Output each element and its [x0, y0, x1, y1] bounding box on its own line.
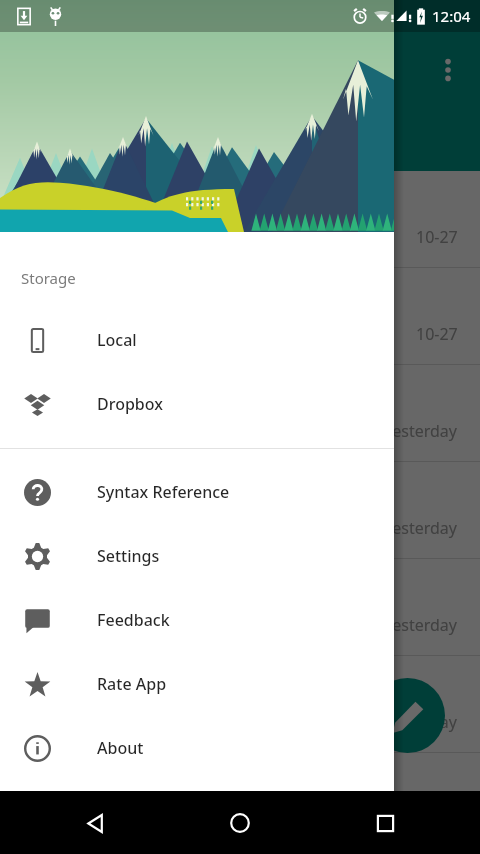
staticText: Yesterday [384, 420, 458, 442]
staticText: Dropbox [97, 393, 163, 415]
button[interactable]: About [0, 716, 394, 780]
staticText: About [97, 737, 144, 759]
button[interactable]: 10-27 [0, 268, 480, 365]
button[interactable]: Settings [0, 524, 394, 588]
button[interactable]: Dropbox [0, 372, 394, 436]
button[interactable]: Yesterday [0, 365, 480, 462]
button[interactable]: Recents [362, 800, 408, 846]
staticText: Storage [21, 268, 76, 288]
button[interactable]: 10-27 [0, 171, 480, 268]
staticText: Yesterday [384, 517, 458, 539]
button[interactable]: New note [370, 678, 445, 753]
staticText: Yesterday [384, 711, 458, 733]
staticText: Rate App [97, 673, 167, 695]
button[interactable]: Back [72, 800, 118, 846]
button[interactable]: Local [0, 308, 394, 372]
button[interactable]: Yesterday [0, 462, 480, 559]
staticText: 10-27 [416, 226, 458, 248]
button[interactable]: Yesterday [0, 656, 480, 753]
button[interactable]: Home [217, 800, 263, 846]
staticText: 10-27 [416, 323, 458, 345]
staticText: Yesterday [384, 614, 458, 636]
button[interactable]: More options [424, 46, 472, 94]
staticText: Syntax Reference [97, 481, 230, 503]
button[interactable]: Syntax Reference [0, 460, 394, 524]
staticText: Settings [97, 545, 160, 567]
staticText: Feedback [97, 609, 170, 631]
staticText: Yesterday [384, 808, 458, 830]
staticText: Local [97, 329, 137, 351]
button[interactable]: Yesterday [0, 753, 480, 850]
staticText: 12:04 [432, 6, 471, 26]
button[interactable]: Feedback [0, 588, 394, 652]
button[interactable]: Yesterday [0, 559, 480, 656]
button[interactable]: Rate App [0, 652, 394, 716]
